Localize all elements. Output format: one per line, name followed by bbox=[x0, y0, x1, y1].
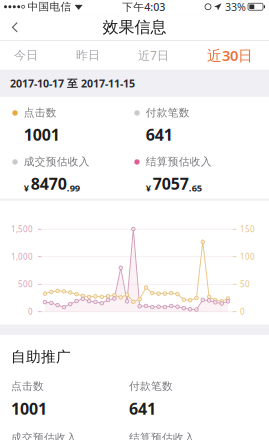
staticText: 641 bbox=[146, 124, 173, 145]
staticText: 1001 bbox=[11, 398, 47, 419]
staticText: ¥ bbox=[24, 182, 31, 194]
staticText: 近7日 bbox=[138, 47, 169, 63]
staticText: 0 bbox=[28, 306, 33, 317]
staticText: 近30日 bbox=[207, 45, 253, 65]
staticText: 效果信息 bbox=[102, 17, 166, 37]
staticText: 付款笔数 bbox=[129, 380, 173, 393]
staticText: 今日 bbox=[14, 48, 38, 63]
staticText: 下午4:03 bbox=[122, 0, 165, 14]
staticText: 641 bbox=[129, 398, 156, 419]
staticText: 150 bbox=[240, 224, 255, 234]
button[interactable]: 今日 bbox=[14, 41, 38, 70]
staticText: 成交预估收入 bbox=[11, 431, 77, 440]
staticText: 1001 bbox=[24, 124, 60, 145]
button[interactable]: 近7日 bbox=[138, 41, 169, 70]
button[interactable]: 返回 bbox=[0, 14, 30, 40]
staticText: .99 bbox=[67, 182, 80, 194]
staticText: 8470 bbox=[31, 173, 67, 194]
staticText: .65 bbox=[189, 182, 202, 194]
staticText: 1,000 bbox=[11, 251, 33, 262]
staticText: 500 bbox=[18, 279, 33, 289]
staticText: 50 bbox=[240, 279, 250, 289]
staticText: 昨日 bbox=[76, 48, 100, 63]
staticText: 2017-10-17 至 2017-11-15 bbox=[10, 76, 135, 90]
staticText: 1,500 bbox=[11, 224, 33, 234]
staticText: 中国电信 bbox=[25, 0, 75, 13]
staticText: 点击数 bbox=[24, 106, 57, 119]
staticText: 成交预估收入 bbox=[24, 155, 90, 168]
staticText: 33% bbox=[222, 0, 246, 14]
staticText: 7057 bbox=[153, 173, 189, 194]
staticText: 自助推广 bbox=[11, 348, 71, 366]
staticText: 100 bbox=[240, 251, 255, 262]
staticText: 点击数 bbox=[11, 380, 44, 393]
staticText: 结算预估收入 bbox=[146, 155, 212, 168]
staticText: 结算预估收入 bbox=[129, 431, 195, 440]
button[interactable]: 近30日 bbox=[207, 41, 253, 70]
staticText: 付款笔数 bbox=[146, 106, 190, 119]
staticText: ¥ bbox=[146, 182, 153, 194]
button[interactable]: 昨日 bbox=[76, 41, 100, 70]
staticText: 0 bbox=[240, 306, 245, 317]
